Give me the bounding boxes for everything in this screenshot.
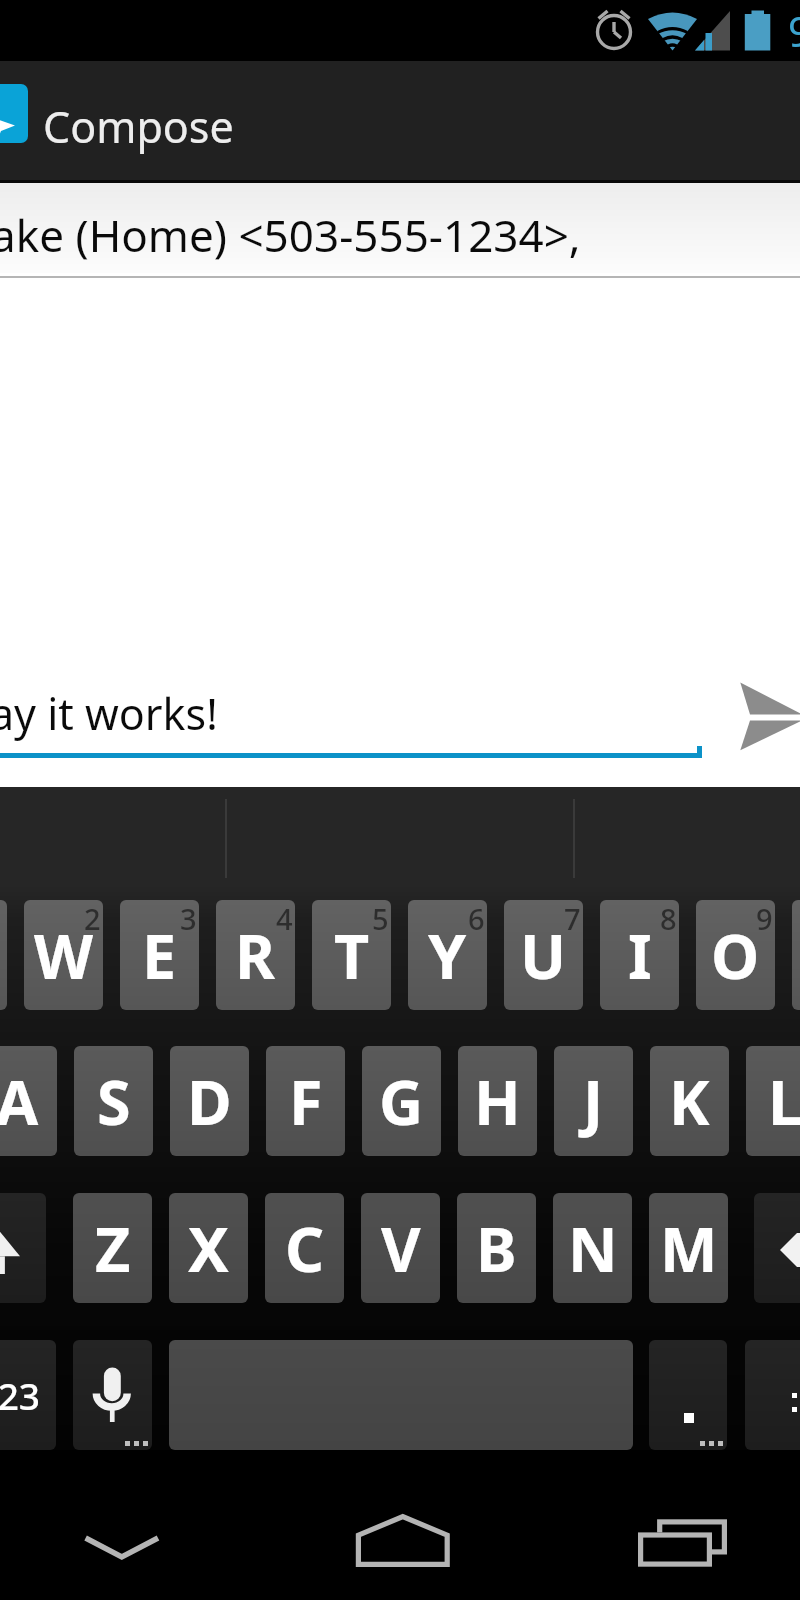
staticText: Y bbox=[428, 914, 467, 997]
button[interactable]: V bbox=[361, 1193, 440, 1303]
button[interactable]: Home bbox=[310, 1450, 490, 1600]
button[interactable]: H bbox=[458, 1046, 537, 1156]
staticText: N bbox=[568, 1207, 618, 1290]
staticText: Compose bbox=[43, 97, 234, 156]
staticText: ake (Home) <503-555-1234>, bbox=[0, 205, 581, 265]
button[interactable]: Hide keyboard bbox=[40, 1450, 220, 1600]
button[interactable]: J bbox=[554, 1046, 633, 1156]
button[interactable]: X bbox=[169, 1193, 248, 1303]
staticText: G bbox=[379, 1060, 424, 1143]
button[interactable]: L bbox=[746, 1046, 800, 1156]
button[interactable]: N bbox=[553, 1193, 632, 1303]
staticText: 9 bbox=[756, 900, 773, 938]
staticText: S bbox=[97, 1060, 131, 1143]
staticText: V bbox=[381, 1207, 421, 1290]
staticText: H bbox=[474, 1060, 521, 1143]
button[interactable]: F bbox=[266, 1046, 345, 1156]
button[interactable]: Recent apps bbox=[600, 1450, 780, 1600]
button[interactable]: Delete bbox=[754, 1193, 800, 1303]
button[interactable]: O bbox=[696, 900, 775, 1010]
staticText: R bbox=[235, 914, 276, 997]
button[interactable]: B bbox=[457, 1193, 536, 1303]
button[interactable]: C bbox=[265, 1193, 344, 1303]
staticText: L bbox=[768, 1060, 800, 1143]
button[interactable]: Period bbox=[649, 1340, 727, 1450]
staticText: B bbox=[476, 1207, 517, 1290]
button[interactable]: P bbox=[792, 900, 800, 1010]
button[interactable]: G bbox=[362, 1046, 441, 1156]
button[interactable]: Symbols bbox=[0, 1340, 56, 1450]
staticText: 5 bbox=[372, 900, 389, 938]
staticText: 3 bbox=[180, 900, 197, 938]
button[interactable]: Z bbox=[73, 1193, 152, 1303]
button[interactable]: Q bbox=[0, 900, 7, 1010]
staticText: W bbox=[34, 914, 93, 997]
staticText: E bbox=[142, 914, 177, 997]
button[interactable]: M bbox=[649, 1193, 728, 1303]
staticText: F bbox=[289, 1060, 323, 1143]
button[interactable]: Send bbox=[700, 660, 800, 770]
staticText: O bbox=[711, 914, 760, 997]
staticText: ?123 bbox=[0, 1370, 41, 1420]
button[interactable]: W bbox=[24, 900, 103, 1010]
staticText: U bbox=[520, 914, 567, 997]
staticText: 9 bbox=[788, 3, 800, 59]
staticText: T bbox=[334, 914, 370, 997]
staticText: 4 bbox=[276, 900, 293, 938]
staticText: M bbox=[660, 1207, 718, 1290]
staticText: I bbox=[628, 914, 652, 997]
button[interactable]: Up bbox=[0, 84, 28, 143]
staticText: ay it works! bbox=[0, 684, 218, 743]
button[interactable]: T bbox=[312, 900, 391, 1010]
button[interactable]: U bbox=[504, 900, 583, 1010]
button[interactable]: ake (Home) <503-555-1234>, bbox=[0, 183, 800, 273]
button[interactable]: Voice input bbox=[73, 1340, 152, 1450]
staticText: 8 bbox=[660, 900, 677, 938]
staticText: 6 bbox=[468, 900, 485, 938]
staticText: J bbox=[583, 1060, 604, 1143]
staticText: 2 bbox=[84, 900, 101, 938]
button[interactable]: Y bbox=[408, 900, 487, 1010]
button[interactable]: Colon bbox=[745, 1340, 800, 1450]
staticText: Z bbox=[95, 1207, 131, 1290]
button[interactable]: K bbox=[650, 1046, 729, 1156]
button[interactable]: S bbox=[74, 1046, 153, 1156]
staticText: A bbox=[0, 1060, 39, 1143]
button[interactable]: Shift bbox=[0, 1193, 46, 1303]
button[interactable]: E bbox=[120, 900, 199, 1010]
staticText: 7 bbox=[564, 900, 581, 938]
staticText: D bbox=[187, 1060, 232, 1143]
button[interactable]: I bbox=[600, 900, 679, 1010]
button[interactable]: D bbox=[170, 1046, 249, 1156]
staticText: C bbox=[285, 1207, 325, 1290]
button[interactable]: A bbox=[0, 1046, 57, 1156]
staticText: X bbox=[188, 1207, 229, 1290]
staticText: 1 bbox=[0, 900, 5, 938]
button[interactable]: R bbox=[216, 900, 295, 1010]
staticText: K bbox=[669, 1060, 710, 1143]
